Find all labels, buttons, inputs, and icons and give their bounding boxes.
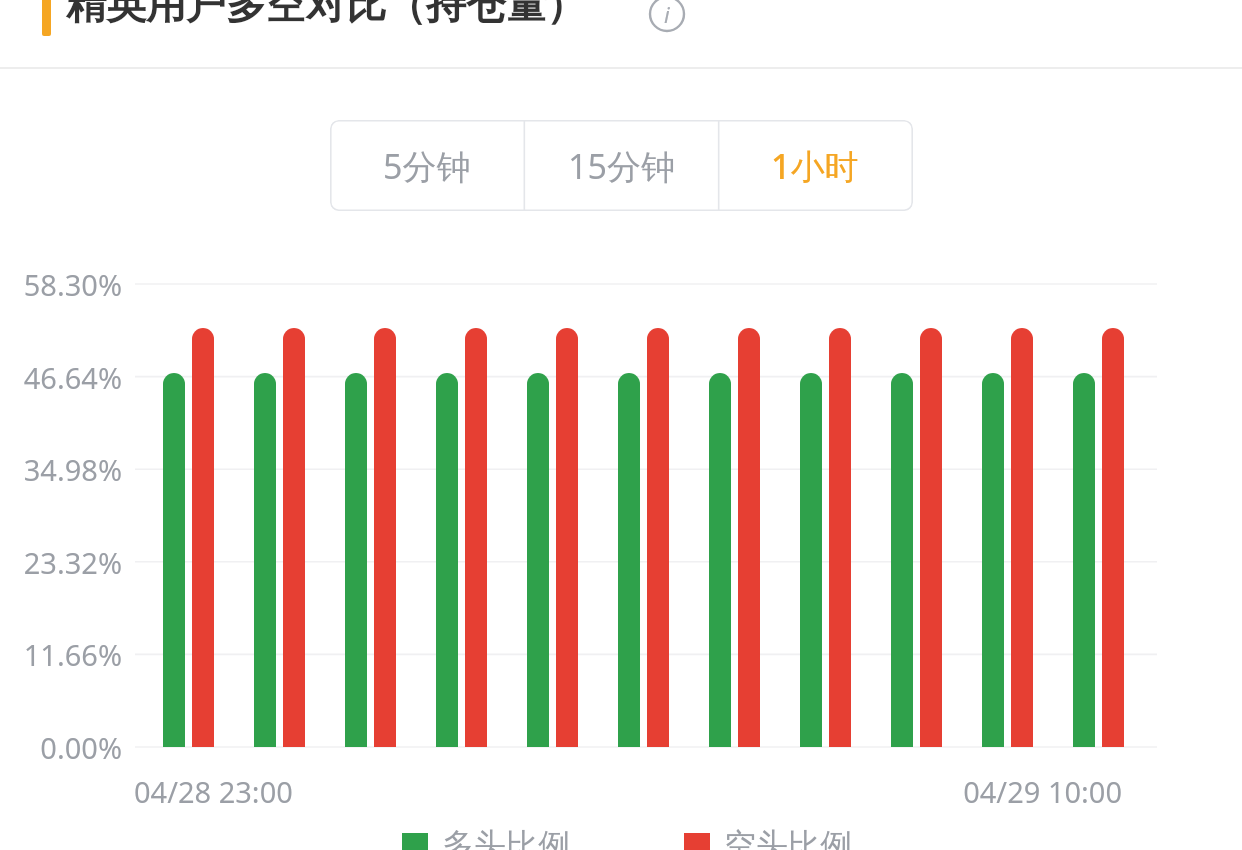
staticText: i	[664, 0, 670, 29]
button[interactable]: 说明	[648, 0, 686, 33]
staticText: 空头比例	[724, 825, 852, 850]
button[interactable]: 空头比例	[684, 825, 852, 850]
staticText: 0.00%	[40, 728, 122, 767]
staticText: 15分钟	[568, 143, 675, 189]
staticText: 23.32%	[23, 543, 122, 582]
staticText: 11.66%	[23, 635, 122, 674]
staticText: 1小时	[771, 143, 859, 189]
button[interactable]: 5分钟	[330, 120, 524, 211]
staticText: 34.98%	[23, 450, 122, 489]
staticText: 多头比例	[442, 825, 570, 850]
staticText: 5分钟	[383, 143, 471, 189]
staticText: 46.64%	[23, 358, 122, 397]
button[interactable]: 多头比例	[402, 825, 570, 850]
button[interactable]: 1小时	[718, 120, 912, 211]
staticText: 精英用户多空对比（持仓量）	[66, 0, 586, 29]
button[interactable]: 15分钟	[524, 120, 718, 211]
staticText: 04/28 23:00	[134, 772, 293, 811]
staticText: 58.30%	[23, 265, 122, 304]
staticText: 04/29 10:00	[963, 772, 1122, 811]
